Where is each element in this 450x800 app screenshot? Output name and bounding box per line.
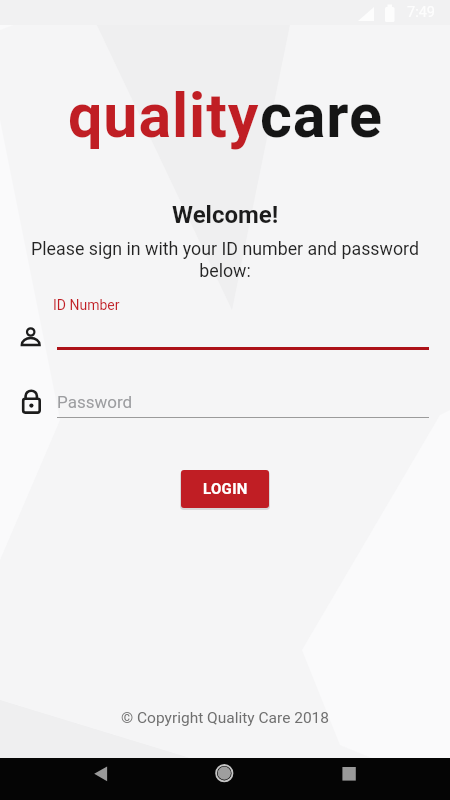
staticText: Password bbox=[57, 392, 133, 412]
button[interactable] bbox=[330, 758, 368, 800]
staticText: 7:49 bbox=[407, 4, 435, 21]
staticText: care bbox=[260, 80, 383, 151]
staticText: Welcome! bbox=[172, 201, 279, 229]
staticText: ID Number bbox=[53, 297, 120, 313]
button[interactable] bbox=[57, 386, 429, 418]
staticText: quality bbox=[68, 80, 260, 151]
button[interactable]: LOGIN bbox=[181, 470, 269, 508]
button[interactable] bbox=[82, 758, 120, 800]
button[interactable] bbox=[57, 314, 429, 349]
staticText: Please sign in with your ID number and p… bbox=[10, 238, 440, 281]
staticText: © Copyright Quality Care 2018 bbox=[121, 709, 330, 727]
button[interactable] bbox=[205, 758, 243, 800]
staticText: LOGIN bbox=[203, 480, 248, 498]
